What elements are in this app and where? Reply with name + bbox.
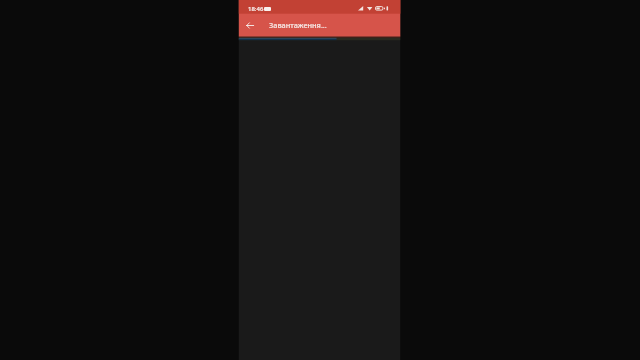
button[interactable]: Back <box>239 14 261 37</box>
staticText: Завантаження... <box>269 20 327 30</box>
staticText: 18:46 <box>248 5 264 13</box>
